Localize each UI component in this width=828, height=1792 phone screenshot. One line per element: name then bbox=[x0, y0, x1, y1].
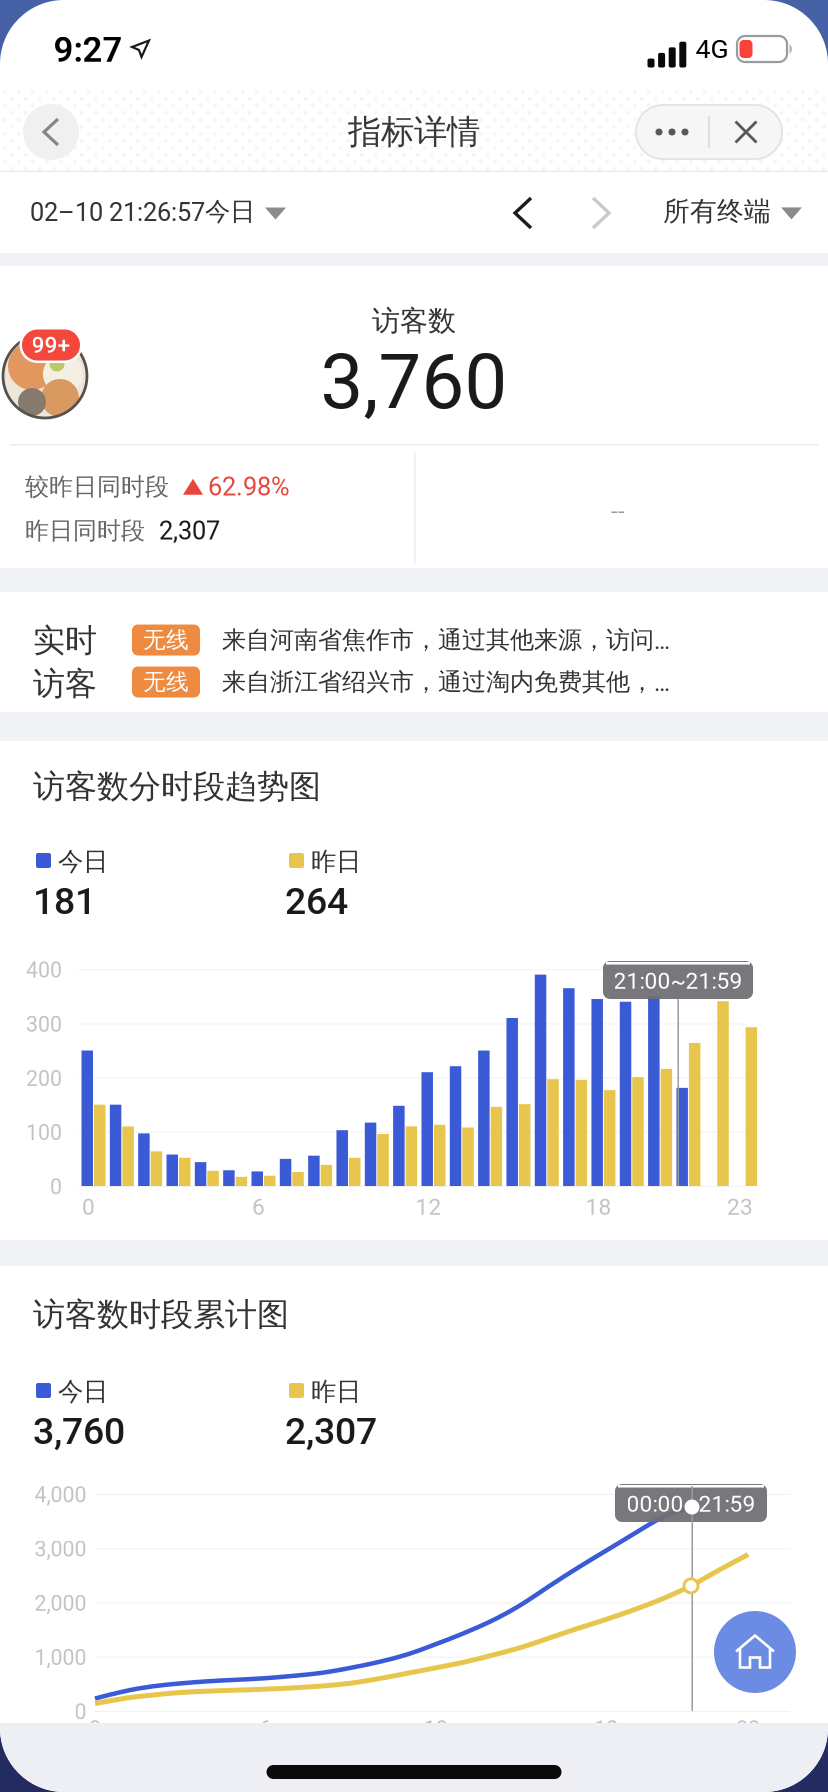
staticText: 62.98% bbox=[208, 472, 290, 501]
staticText: 18 bbox=[594, 1717, 618, 1741]
staticText: 3,000 bbox=[34, 1537, 86, 1561]
staticText: 无线 bbox=[143, 626, 189, 654]
staticText: 23 bbox=[727, 1194, 753, 1220]
button[interactable]: 无线 bbox=[132, 662, 824, 702]
staticText: 昨日同时段 bbox=[25, 516, 145, 545]
button[interactable]: 无线 bbox=[132, 620, 824, 660]
staticText: 访客数时段累计图 bbox=[33, 1295, 289, 1334]
staticText: 18 bbox=[585, 1194, 611, 1220]
staticText: 实时 bbox=[33, 621, 97, 660]
staticText: 23 bbox=[736, 1717, 760, 1741]
staticText: 02–10 21:26:57今日 bbox=[30, 196, 255, 227]
staticText: 今日 bbox=[58, 846, 108, 877]
staticText: 2,307 bbox=[159, 516, 220, 545]
staticText: 无线 bbox=[143, 668, 189, 696]
staticText: 4G bbox=[695, 34, 728, 64]
staticText: 0 bbox=[74, 1700, 86, 1724]
staticText: 访客数分时段趋势图 bbox=[33, 767, 321, 806]
staticText: 2,307 bbox=[285, 1410, 377, 1453]
staticText: 较昨日同时段 bbox=[25, 472, 169, 501]
staticText: 3,760 bbox=[320, 339, 507, 425]
button[interactable]: 02–10 21:26:57今日 bbox=[30, 196, 286, 227]
staticText: 300 bbox=[26, 1012, 62, 1037]
staticText: 昨日 bbox=[311, 846, 361, 877]
staticText: 1,000 bbox=[34, 1646, 86, 1670]
button[interactable]: Back bbox=[23, 104, 79, 160]
staticText: 12 bbox=[415, 1194, 441, 1220]
staticText: 昨日 bbox=[311, 1376, 361, 1407]
button[interactable]: More bbox=[636, 105, 708, 159]
staticText: 4,000 bbox=[34, 1483, 86, 1507]
staticText: 指标详情 bbox=[348, 111, 480, 152]
button[interactable]: Previous bbox=[505, 188, 541, 238]
button[interactable]: 所有终端 bbox=[663, 195, 802, 228]
staticText: 400 bbox=[26, 958, 62, 982]
staticText: 访客 bbox=[33, 664, 97, 704]
staticText: 00:00~21:59 bbox=[626, 1491, 755, 1517]
staticText: 264 bbox=[285, 880, 348, 923]
staticText: 12 bbox=[424, 1717, 448, 1741]
staticText: 2,000 bbox=[34, 1591, 86, 1616]
staticText: 来自河南省焦作市，通过其他来源，访问… bbox=[222, 625, 670, 655]
staticText: 99+ bbox=[31, 332, 70, 358]
staticText: 0 bbox=[82, 1194, 95, 1220]
staticText: 0 bbox=[50, 1175, 62, 1199]
staticText: 3,760 bbox=[33, 1410, 125, 1453]
button[interactable]: Close bbox=[710, 105, 782, 159]
staticText: 来自浙江省绍兴市，通过淘内免费其他，… bbox=[222, 667, 670, 697]
staticText: 9:27 bbox=[53, 30, 122, 70]
button[interactable]: 回到首页 bbox=[714, 1611, 796, 1693]
staticText: 访客数 bbox=[372, 304, 456, 338]
staticText: 所有终端 bbox=[663, 195, 771, 228]
button[interactable]: 消息 bbox=[0, 328, 90, 424]
staticText: 今日 bbox=[58, 1376, 108, 1407]
staticText: 100 bbox=[26, 1121, 62, 1145]
staticText: 6 bbox=[259, 1717, 271, 1741]
button[interactable]: Next bbox=[583, 188, 619, 238]
staticText: 6 bbox=[252, 1194, 265, 1220]
staticText: 200 bbox=[26, 1066, 62, 1091]
staticText: -- bbox=[611, 497, 625, 525]
staticText: 0 bbox=[89, 1717, 101, 1741]
staticText: 181 bbox=[33, 880, 96, 923]
staticText: 21:00~21:59 bbox=[613, 968, 742, 994]
